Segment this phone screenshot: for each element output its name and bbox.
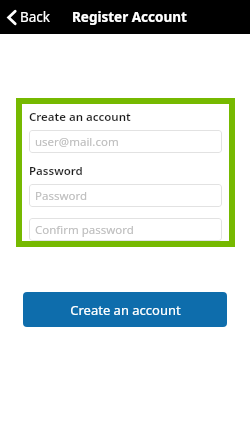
staticText: Password xyxy=(35,188,88,204)
staticText: Create an account xyxy=(29,109,131,125)
staticText: Password xyxy=(29,163,83,179)
staticText: Register Account xyxy=(72,8,187,26)
button[interactable]: Confirm password xyxy=(29,218,222,241)
button[interactable]: Password xyxy=(29,184,222,207)
button[interactable]: Back xyxy=(0,4,59,30)
staticText: Back xyxy=(20,8,51,26)
staticText: Confirm password xyxy=(35,222,134,238)
other: Back xyxy=(7,10,17,25)
button[interactable]: user@mail.com xyxy=(29,130,222,153)
staticText: user@mail.com xyxy=(35,134,119,150)
button[interactable]: Create an account xyxy=(23,292,227,327)
staticText: Create an account xyxy=(70,301,181,319)
